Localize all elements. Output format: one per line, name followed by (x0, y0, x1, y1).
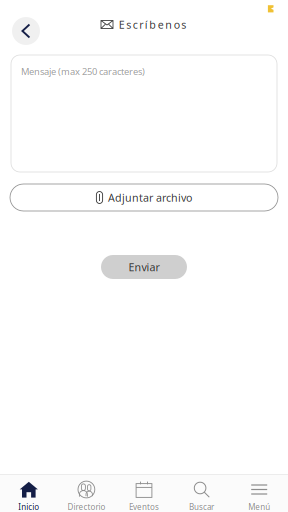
button[interactable]: Eventos (115, 474, 173, 512)
button[interactable]: Menú (230, 474, 288, 512)
staticText: Enviar (128, 260, 159, 274)
staticText: Eventos (129, 502, 159, 512)
staticText: Directorio (67, 502, 105, 512)
button[interactable]: Inicio (0, 474, 58, 512)
staticText: Adjuntar archivo (108, 190, 192, 205)
button[interactable]: Back (12, 17, 40, 45)
staticText: Inicio (18, 502, 39, 512)
button[interactable]: Buscar (173, 474, 230, 512)
staticText: Mensaje (max 250 caracteres) (21, 65, 145, 78)
staticText: Menú (248, 502, 270, 512)
button[interactable]: Adjuntar archivo (10, 184, 278, 211)
button[interactable]: Directorio (58, 474, 115, 512)
staticText: Buscar (189, 502, 214, 512)
staticText: Escríbenos (119, 17, 186, 32)
button[interactable]: Enviar (101, 255, 187, 279)
